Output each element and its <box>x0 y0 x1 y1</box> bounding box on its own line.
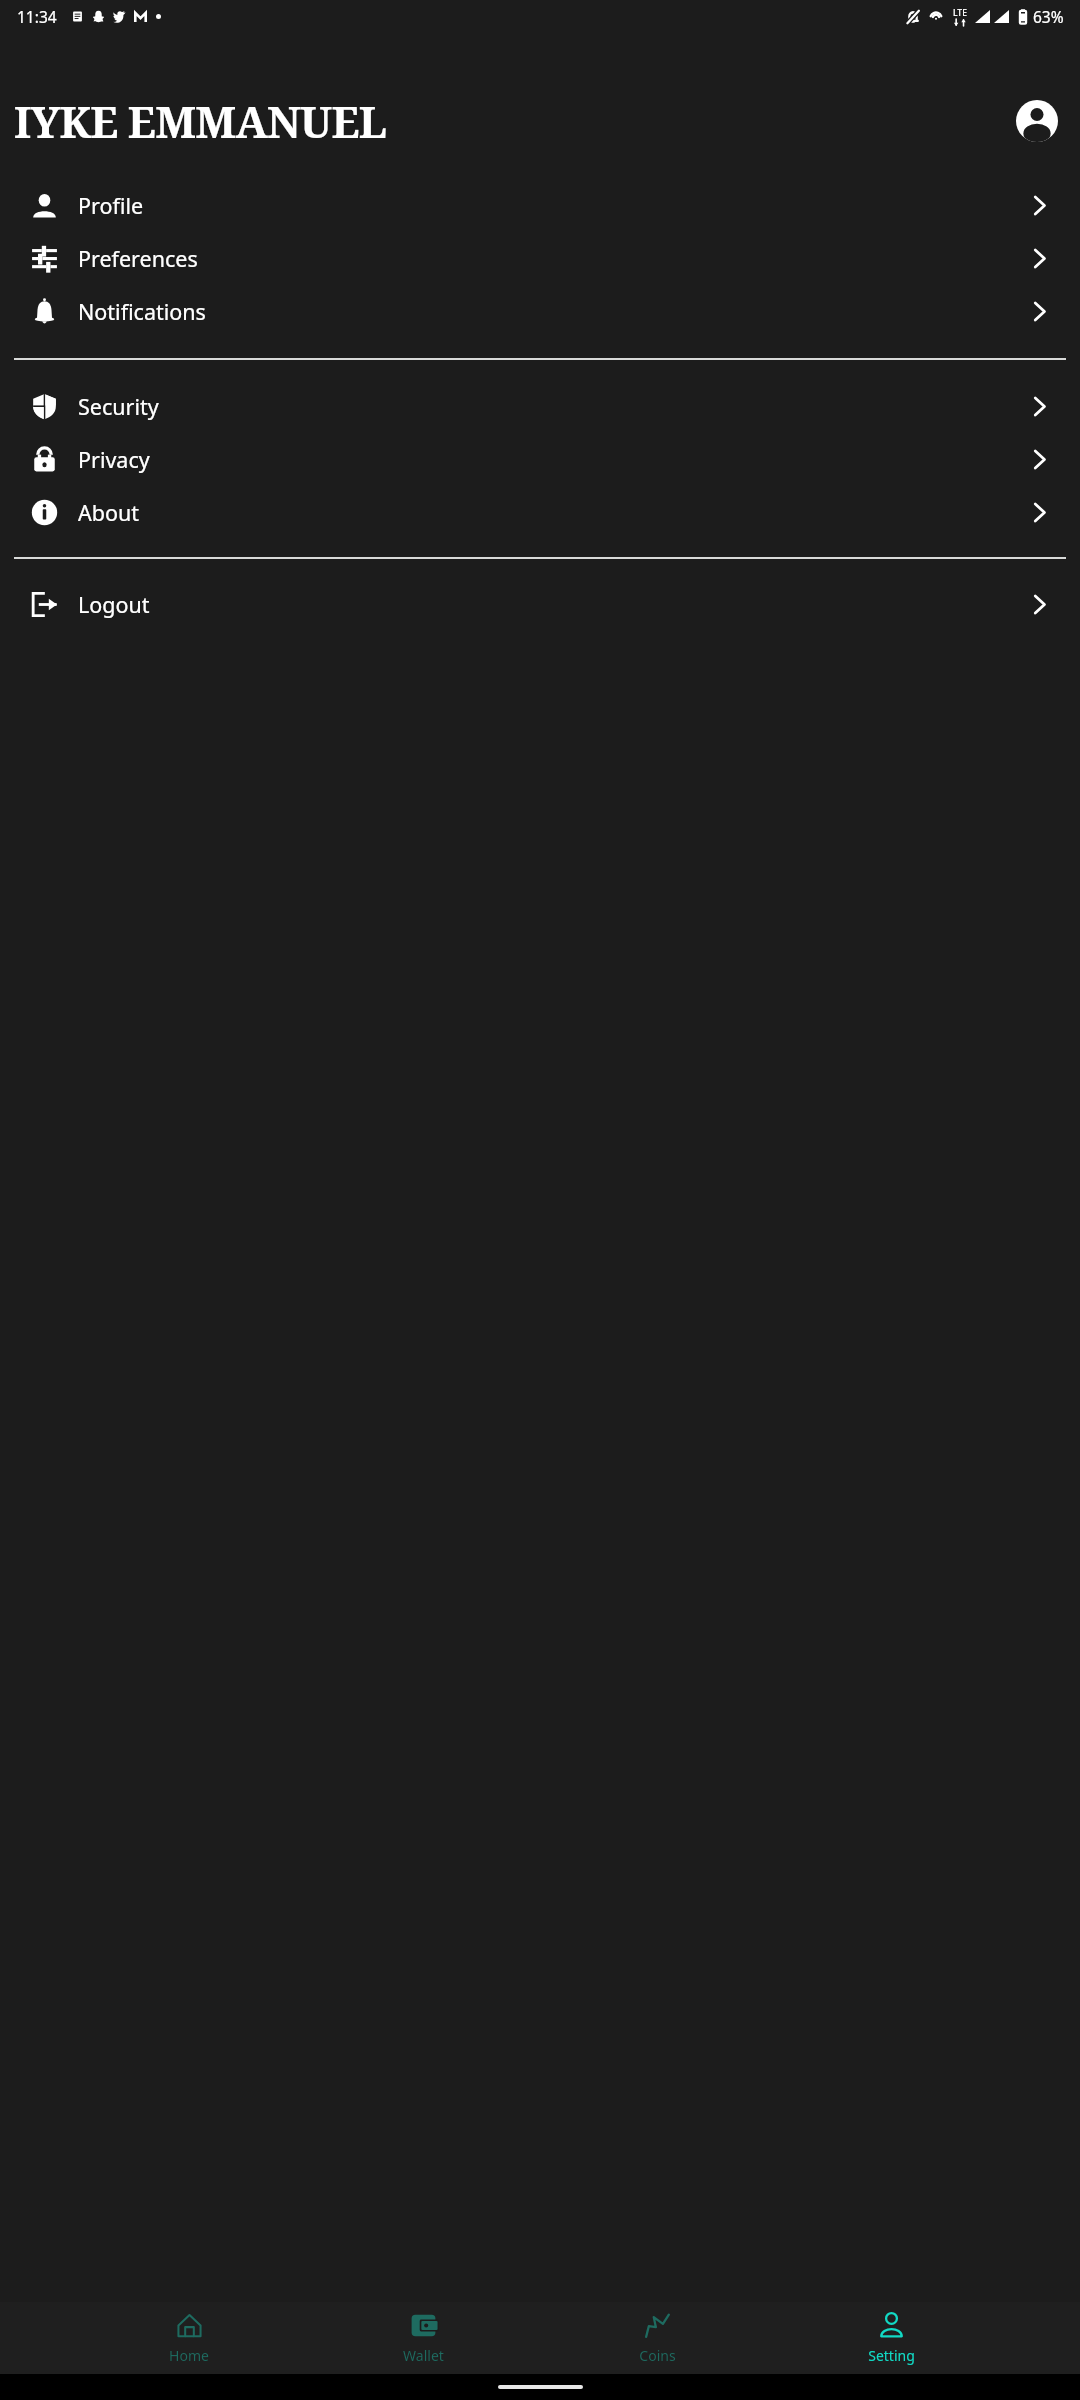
button[interactable]: Privacy <box>0 433 1080 486</box>
button[interactable]: Profile <box>0 179 1080 232</box>
button[interactable]: Logout <box>0 578 1080 631</box>
button[interactable]: Home <box>144 2302 234 2374</box>
button[interactable]: Security <box>0 380 1080 433</box>
button[interactable]: About <box>0 486 1080 539</box>
staticText: Wallet <box>403 2346 444 2365</box>
button[interactable]: Notifications <box>0 285 1080 338</box>
staticText: Security <box>78 392 159 421</box>
staticText: LTE <box>953 7 967 19</box>
button[interactable]: Wallet <box>378 2302 468 2374</box>
staticText: Setting <box>868 2346 915 2365</box>
button[interactable]: Setting <box>846 2302 936 2374</box>
staticText: 11:34 <box>17 6 57 27</box>
button[interactable]: Preferences <box>0 232 1080 285</box>
staticText: Preferences <box>78 244 198 273</box>
staticText: 63% <box>1033 6 1064 27</box>
staticText: IYKE EMMANUEL <box>14 92 386 151</box>
staticText: Privacy <box>78 445 150 474</box>
staticText: Profile <box>78 191 144 220</box>
staticText: Logout <box>78 590 150 619</box>
staticText: Home <box>169 2346 209 2365</box>
button[interactable]: Coins <box>612 2302 702 2374</box>
button[interactable]: Account <box>1016 100 1058 142</box>
staticText: Notifications <box>78 297 206 326</box>
staticText: About <box>78 498 140 527</box>
staticText: Coins <box>639 2346 676 2365</box>
